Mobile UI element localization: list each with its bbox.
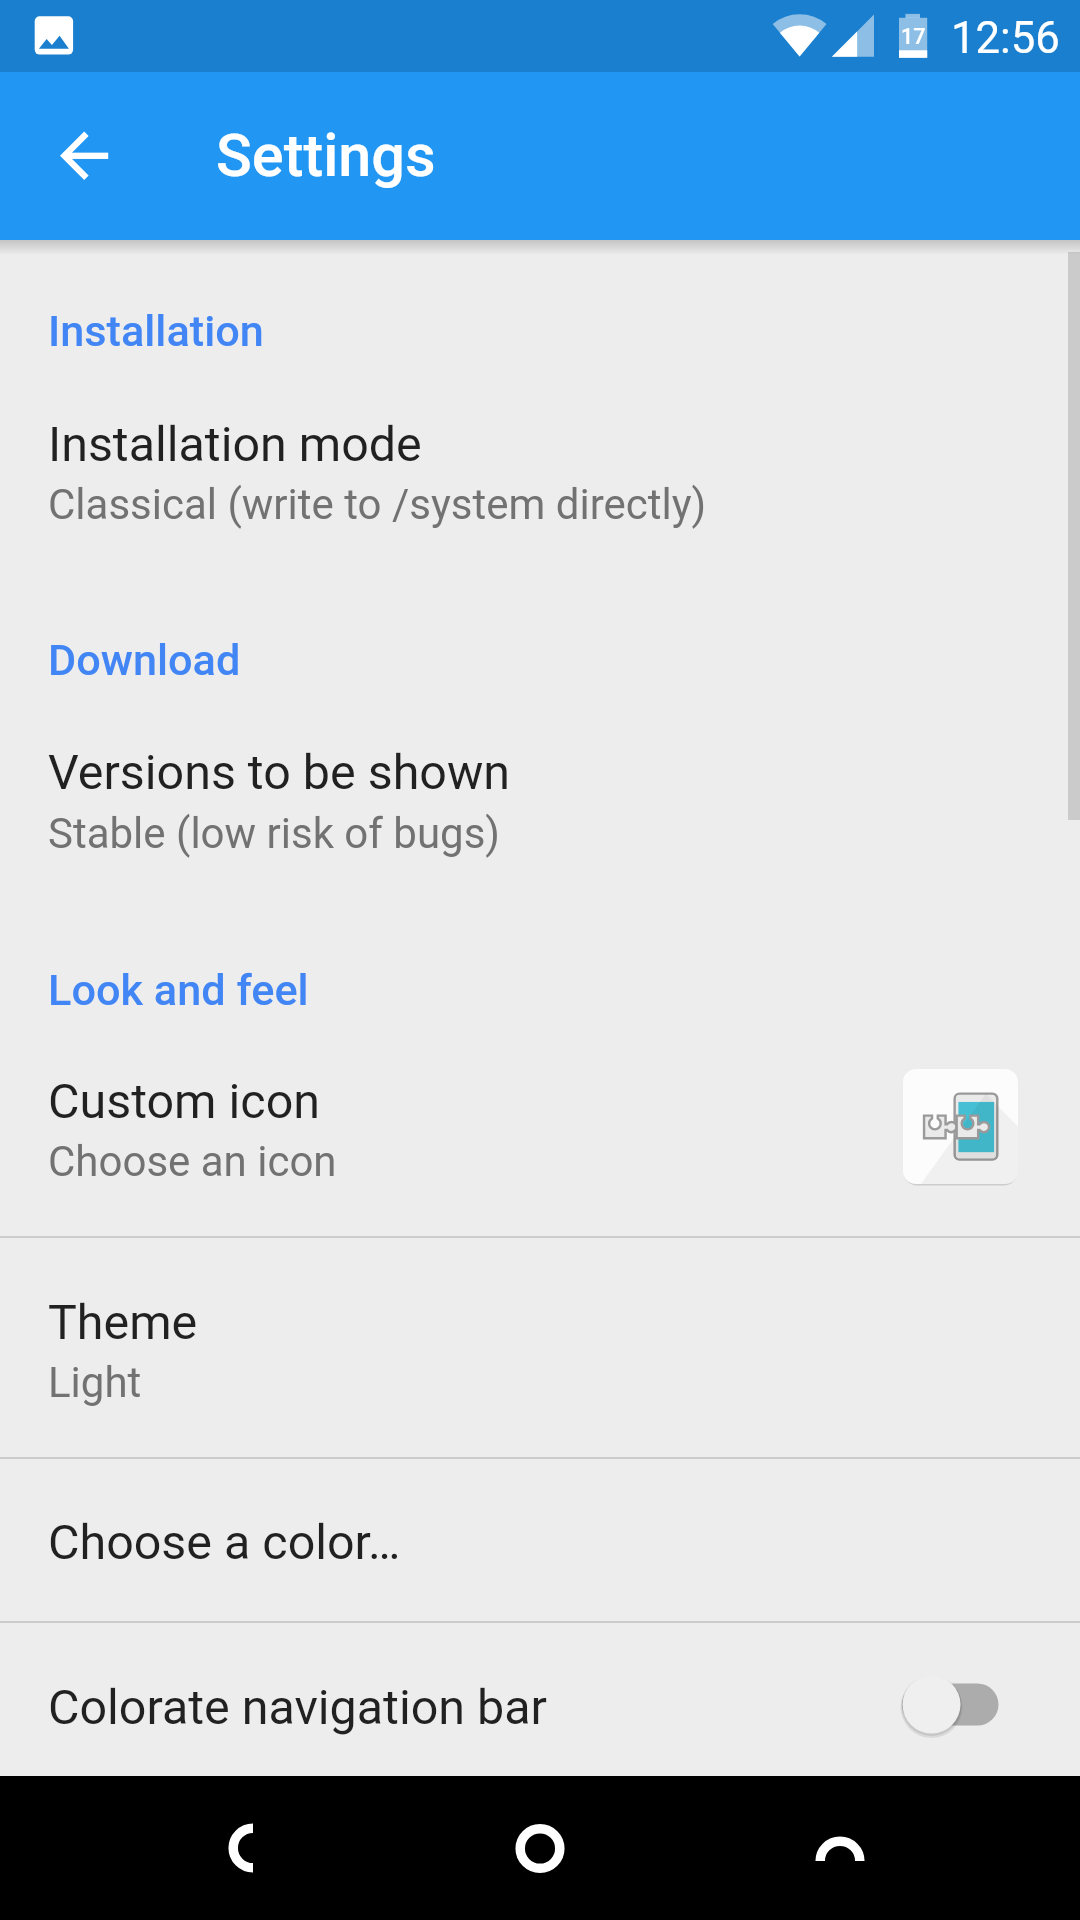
staticText: Installation	[48, 306, 264, 357]
staticText: Colorate navigation bar	[48, 1679, 547, 1736]
staticText: Choose a color…	[48, 1514, 401, 1571]
button[interactable]: Custom icon	[0, 1030, 1080, 1236]
button[interactable]: Versions to be shown	[0, 700, 1080, 873]
button[interactable]: Recent apps	[768, 1776, 912, 1920]
staticText: Settings	[216, 121, 436, 190]
button[interactable]: Installation mode	[0, 372, 1080, 545]
button[interactable]: Colorate navigation bar	[0, 1623, 1080, 1776]
staticText: Installation mode	[48, 416, 422, 473]
staticText: Look and feel	[48, 965, 309, 1016]
staticText: Classical (write to /system directly)	[48, 480, 707, 529]
button[interactable]: Theme	[0, 1238, 1080, 1457]
button[interactable]: Navigate up	[36, 108, 132, 204]
staticText: 12:56	[951, 12, 1060, 63]
button[interactable]: Choose a color…	[0, 1459, 1080, 1621]
staticText: 17	[901, 24, 926, 49]
staticText: Download	[48, 635, 241, 686]
staticText: Stable (low risk of bugs)	[48, 809, 500, 858]
staticText: Versions to be shown	[48, 744, 510, 801]
staticText: Theme	[48, 1294, 198, 1351]
staticText: Choose an icon	[48, 1137, 337, 1186]
button[interactable]: Back	[169, 1776, 313, 1920]
button[interactable]: Home	[468, 1776, 612, 1920]
staticText: Custom icon	[48, 1073, 320, 1130]
staticText: Light	[48, 1358, 142, 1407]
